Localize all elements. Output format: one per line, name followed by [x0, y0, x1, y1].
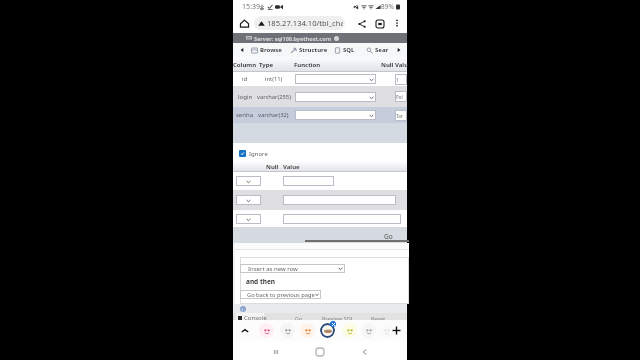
button[interactable]: 185.27.134.10/tbl_cha — [254, 16, 345, 30]
button[interactable]: Function — [295, 92, 376, 102]
staticText: Pol — [396, 94, 403, 100]
staticText: varchar(32) — [258, 111, 289, 119]
staticText: Type — [259, 61, 274, 69]
staticText: Console — [244, 314, 267, 321]
button[interactable]: Value — [283, 195, 396, 205]
staticText: int(11) — [265, 75, 283, 83]
button[interactable]: Sticker — [342, 323, 357, 338]
staticText: Insert as new row — [248, 265, 298, 273]
button[interactable]: Function — [295, 74, 376, 84]
button[interactable]: Null — [236, 176, 261, 186]
staticText: SQL — [343, 46, 355, 54]
button[interactable]: Sticker — [280, 323, 295, 338]
button[interactable]: Sticker — [361, 323, 376, 338]
staticText: Structure — [299, 46, 328, 54]
staticText: Sear — [375, 46, 389, 54]
staticText: 15:39 — [242, 2, 260, 12]
staticText: Valu — [395, 61, 409, 69]
button[interactable]: Sticker — [379, 323, 394, 338]
button[interactable]: Go — [384, 232, 393, 241]
staticText: Browse — [260, 46, 282, 54]
button[interactable]: Structure — [290, 43, 328, 57]
button[interactable]: Sear — [366, 43, 389, 57]
button[interactable]: Home — [238, 17, 251, 30]
button[interactable]: Selected sticker — [320, 323, 335, 338]
staticText: Null — [381, 61, 394, 69]
button[interactable]: Value — [283, 176, 334, 186]
button[interactable]: Add — [390, 324, 403, 337]
staticText: Go — [384, 232, 393, 241]
staticText: 89% — [381, 2, 394, 11]
staticText: Ignore — [249, 150, 268, 158]
staticText: Reset — [371, 315, 386, 322]
button[interactable]: Null — [236, 214, 261, 224]
button[interactable]: Browse — [251, 43, 282, 57]
button[interactable]: Previous tabs — [237, 45, 247, 55]
staticText: Column — [233, 61, 257, 69]
staticText: 185.27.134.10/tbl_cha — [267, 18, 343, 28]
staticText: Tar — [396, 113, 403, 119]
staticText: senha — [236, 111, 254, 119]
staticText: login — [238, 93, 253, 101]
button[interactable]: Back — [355, 342, 374, 360]
staticText: and then — [246, 277, 276, 286]
staticText: Go back to previous page — [247, 291, 315, 299]
staticText: i — [242, 307, 244, 312]
button[interactable]: Next tabs — [394, 45, 404, 55]
staticText: varchar(255) — [257, 93, 291, 101]
button[interactable]: Recents — [266, 342, 285, 360]
button[interactable]: Function — [295, 110, 376, 120]
staticText: Go — [295, 315, 303, 322]
button[interactable]: Insert as new row — [240, 264, 345, 273]
staticText: Null — [266, 163, 279, 171]
staticText: Value — [283, 163, 300, 171]
button[interactable]: Sticker — [300, 323, 315, 338]
staticText: Preview SQL — [322, 315, 354, 322]
staticText: Function — [294, 61, 321, 69]
staticText: 1 — [396, 77, 399, 83]
button[interactable]: Null — [236, 195, 261, 205]
button[interactable]: Tabs — [373, 17, 386, 30]
button[interactable]: Ignore — [239, 149, 407, 158]
button[interactable]: Value — [283, 214, 401, 224]
staticText: id — [242, 75, 248, 83]
button[interactable]: Sticker — [259, 323, 274, 338]
button[interactable]: Go back to previous page — [240, 290, 321, 299]
button[interactable]: Home — [310, 342, 329, 360]
button[interactable]: More options — [391, 17, 403, 29]
button[interactable]: Console — [233, 313, 407, 320]
button[interactable]: Expand toolbar — [238, 324, 251, 337]
button[interactable]: Share — [355, 17, 368, 30]
button[interactable]: SQL — [334, 43, 355, 57]
staticText: Server: sql100.byethost.com — [254, 35, 332, 42]
